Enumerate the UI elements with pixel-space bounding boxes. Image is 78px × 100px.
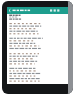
button[interactable]: Transpose: [56, 8, 60, 12]
button[interactable]: Back: [7, 7, 12, 12]
button[interactable]: Back: [7, 7, 68, 14]
button[interactable]: [7, 14, 68, 84]
